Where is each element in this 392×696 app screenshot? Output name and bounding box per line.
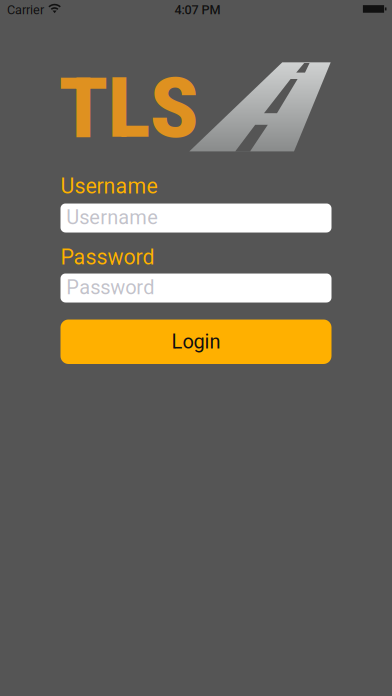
button[interactable]: Login (60, 319, 331, 364)
staticText: Password (60, 245, 154, 270)
staticText: Username (60, 174, 157, 199)
staticText: Carrier (7, 3, 44, 17)
button[interactable]: Username (60, 203, 331, 232)
staticText: TLS (59, 60, 199, 157)
staticText: 4:07 PM (174, 3, 220, 17)
staticText: Login (171, 330, 220, 353)
staticText: Password (66, 276, 154, 299)
button[interactable]: Password (60, 273, 331, 302)
staticText: Username (66, 206, 158, 229)
